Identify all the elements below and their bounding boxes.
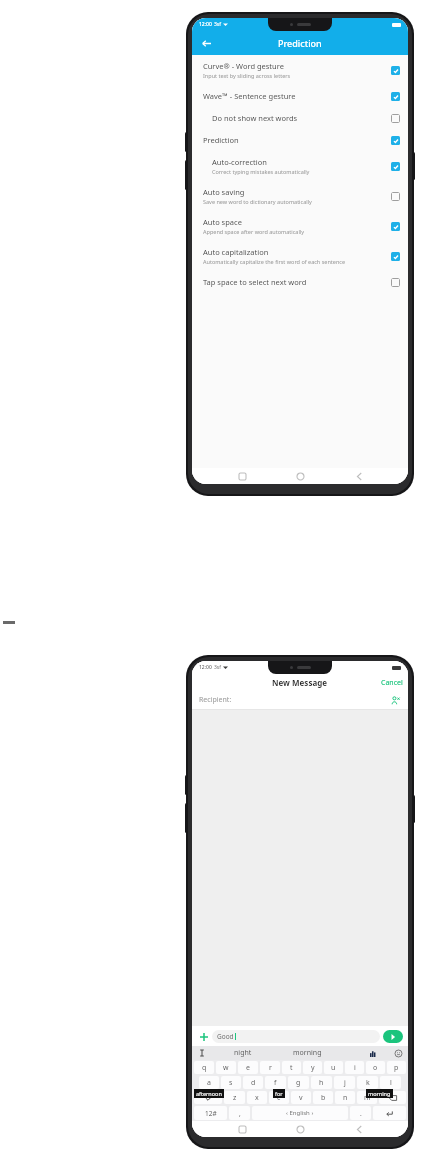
button[interactable]: Prediction — [192, 129, 408, 151]
button[interactable]: Auto saving — [192, 181, 408, 211]
button[interactable]: p — [387, 1061, 406, 1074]
staticText: s — [229, 1078, 233, 1088]
button[interactable]: g — [288, 1076, 309, 1089]
button[interactable]: Wave™ - Sentence gesture — [192, 85, 408, 107]
button[interactable]: Back — [198, 35, 214, 51]
button[interactable]: Unchecked — [390, 113, 400, 123]
button[interactable]: 12# — [194, 1106, 227, 1120]
button[interactable]: Checked — [390, 135, 400, 145]
button[interactable]: t — [282, 1061, 301, 1074]
button[interactable]: Checked — [390, 161, 400, 171]
staticText: v — [299, 1093, 303, 1103]
button[interactable]: Cancel — [381, 678, 403, 688]
button[interactable]: Back — [350, 1121, 368, 1137]
button[interactable]: v — [291, 1091, 311, 1104]
staticText: 12# — [205, 1109, 217, 1118]
button[interactable]: c — [269, 1091, 289, 1104]
staticText: Wave™ - Sentence gesture — [203, 91, 296, 101]
button[interactable]: Enter — [373, 1106, 406, 1120]
button[interactable]: Backspace — [379, 1091, 406, 1104]
button[interactable]: Curve® - Word gesture — [192, 55, 408, 85]
staticText: b — [321, 1093, 326, 1103]
button[interactable]: Recipient: — [192, 691, 408, 709]
staticText: afternoon — [196, 1090, 222, 1097]
button[interactable]: Add contact — [389, 694, 401, 706]
staticText: . — [360, 1109, 362, 1118]
button[interactable]: d — [243, 1076, 263, 1089]
staticText: Auto space — [203, 217, 242, 227]
button[interactable]: Clipboard — [368, 1048, 378, 1058]
staticText: morning — [293, 1048, 322, 1058]
button[interactable]: Auto capitalization — [192, 241, 408, 271]
staticText: e — [246, 1063, 250, 1073]
button[interactable]: morning — [290, 1048, 325, 1058]
button[interactable]: Home — [291, 468, 309, 484]
button[interactable]: z — [224, 1091, 245, 1104]
staticText: New Message — [272, 677, 328, 688]
button[interactable]: Checked — [390, 251, 400, 261]
button[interactable]: Tap space to select next word — [192, 271, 408, 293]
button[interactable]: n — [335, 1091, 355, 1104]
staticText: Save new word to dictionary automaticall… — [203, 198, 312, 205]
button[interactable]: Unchecked — [390, 277, 400, 287]
button[interactable]: s — [221, 1076, 241, 1089]
staticText: f — [274, 1078, 277, 1088]
button[interactable]: ‹ English › — [252, 1106, 348, 1120]
button[interactable]: r — [260, 1061, 280, 1074]
staticText: Auto-correction — [212, 157, 267, 167]
staticText: g — [296, 1078, 301, 1088]
button[interactable]: Recents — [233, 1121, 251, 1137]
button[interactable]: afternoon — [194, 1089, 224, 1098]
staticText: i — [354, 1063, 356, 1073]
button[interactable]: Do not show next words — [192, 107, 408, 129]
button[interactable]: Home — [291, 1121, 309, 1137]
button[interactable]: . — [350, 1106, 371, 1120]
button[interactable]: h — [311, 1076, 332, 1089]
button[interactable]: Auto-correction — [192, 151, 408, 181]
button[interactable]: Good — [212, 1030, 380, 1043]
button[interactable]: i — [345, 1061, 364, 1074]
staticText: x — [255, 1093, 259, 1103]
staticText: a — [207, 1078, 211, 1088]
button[interactable]: q — [194, 1061, 214, 1074]
button[interactable]: Send — [383, 1030, 403, 1043]
button[interactable]: m — [357, 1091, 377, 1104]
button[interactable]: a — [199, 1076, 219, 1089]
button[interactable]: Shift — [194, 1091, 222, 1104]
staticText: Prediction — [278, 37, 322, 49]
button[interactable]: , — [229, 1106, 250, 1120]
button[interactable]: Checked — [390, 65, 400, 75]
staticText: Good — [217, 1032, 234, 1041]
button[interactable]: w — [216, 1061, 236, 1074]
button[interactable]: night — [231, 1048, 255, 1058]
button[interactable]: y — [303, 1061, 322, 1074]
staticText: k — [366, 1078, 370, 1088]
button[interactable]: Checked — [390, 91, 400, 101]
button[interactable]: Cursor control — [197, 1048, 207, 1058]
button[interactable]: e — [238, 1061, 258, 1074]
button[interactable]: Auto space — [192, 211, 408, 241]
button[interactable]: k — [357, 1076, 378, 1089]
staticText: Auto capitalization — [203, 247, 269, 257]
button[interactable]: l — [380, 1076, 401, 1089]
button[interactable]: Emoji — [393, 1048, 403, 1058]
button[interactable]: o — [366, 1061, 385, 1074]
button[interactable]: b — [313, 1091, 333, 1104]
button[interactable]: Add attachment — [197, 1030, 210, 1043]
button[interactable]: f — [265, 1076, 286, 1089]
button[interactable]: x — [247, 1091, 267, 1104]
button[interactable]: u — [324, 1061, 343, 1074]
button[interactable]: Checked — [390, 221, 400, 231]
button[interactable]: for — [273, 1089, 285, 1098]
staticText: d — [251, 1078, 256, 1088]
button[interactable]: morning — [366, 1089, 393, 1098]
button[interactable]: Back — [350, 468, 368, 484]
staticText: y — [311, 1063, 315, 1073]
button[interactable]: Unchecked — [390, 191, 400, 201]
staticText: q — [202, 1063, 207, 1073]
staticText: for — [275, 1090, 283, 1097]
staticText: Auto saving — [203, 187, 245, 197]
button[interactable]: j — [334, 1076, 355, 1089]
staticText: 3sf — [214, 21, 221, 28]
button[interactable]: Recents — [233, 468, 251, 484]
